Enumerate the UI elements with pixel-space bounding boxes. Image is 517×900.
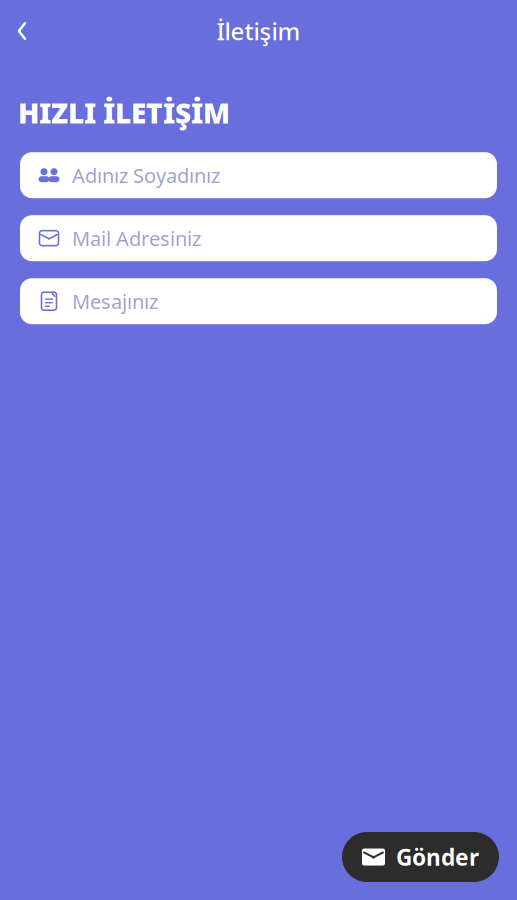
staticText: Mail Adresiniz	[72, 225, 201, 251]
staticText: Mesajınız	[72, 288, 158, 314]
staticText: İletişim	[216, 15, 300, 47]
button[interactable]: Adınız Soyadınız	[20, 152, 497, 198]
button[interactable]: Back	[0, 9, 44, 53]
button[interactable]: Gönder	[342, 832, 499, 882]
staticText: HIZLI İLETİŞİM	[18, 94, 230, 131]
staticText: Gönder	[396, 842, 479, 872]
staticText: Adınız Soyadınız	[72, 162, 220, 188]
button[interactable]: Mail Adresiniz	[20, 215, 497, 261]
button[interactable]: Mesajınız	[20, 278, 497, 324]
